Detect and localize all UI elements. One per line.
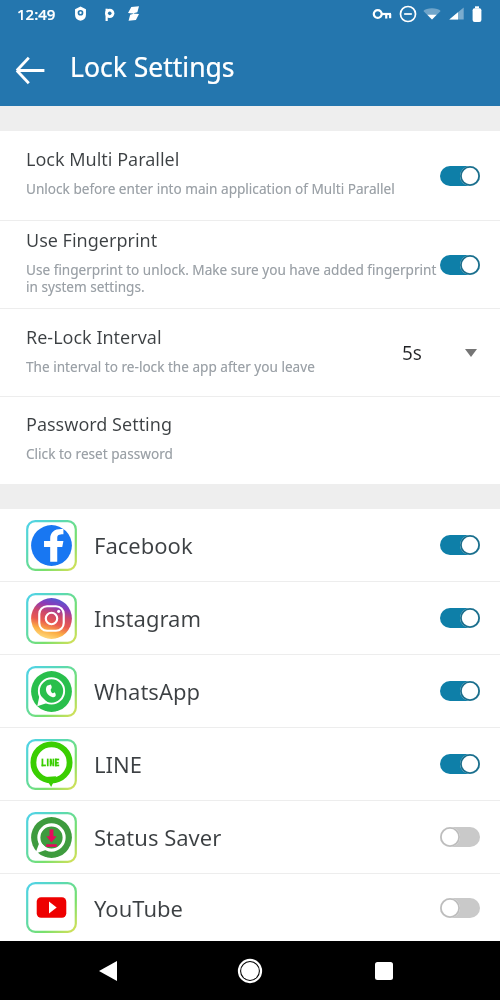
staticText: 12:49 — [17, 4, 56, 24]
staticText: Use fingerprint to unlock. Make sure you… — [26, 260, 437, 296]
button[interactable]: Enabled toggle — [439, 252, 481, 278]
button[interactable]: Facebook — [0, 509, 500, 581]
button[interactable]: Use Fingerprint — [0, 221, 500, 308]
button[interactable]: Disabled toggle — [439, 895, 481, 921]
button[interactable]: Back — [78, 941, 138, 1000]
staticText: Password Setting — [26, 412, 172, 437]
button[interactable]: Enabled toggle — [439, 605, 481, 631]
button[interactable]: Home — [220, 941, 280, 1000]
button[interactable]: Password Setting — [0, 397, 500, 484]
staticText: Instagram — [94, 603, 439, 633]
staticText: Unlock before enter into main applicatio… — [26, 179, 395, 198]
button[interactable]: LINE — [0, 728, 500, 800]
button[interactable]: Lock Multi Parallel — [0, 131, 500, 220]
button[interactable]: Back — [6, 46, 54, 94]
staticText: Click to reset password — [26, 444, 173, 463]
button[interactable]: Re-Lock Interval — [0, 309, 500, 396]
staticText: Lock Multi Parallel — [26, 147, 180, 172]
button[interactable]: Enabled toggle — [439, 163, 481, 189]
button[interactable]: Instagram — [0, 582, 500, 654]
button[interactable]: Disabled toggle — [439, 824, 481, 850]
staticText: Use Fingerprint — [26, 228, 158, 253]
staticText: Re-Lock Interval — [26, 325, 162, 350]
staticText: YouTube — [94, 893, 439, 923]
staticText: 5s — [402, 340, 422, 366]
button[interactable]: Enabled toggle — [439, 751, 481, 777]
staticText: Status Saver — [94, 822, 439, 852]
staticText: The interval to re-lock the app after yo… — [26, 357, 315, 376]
button[interactable]: Enabled toggle — [439, 678, 481, 704]
button[interactable]: Enabled toggle — [439, 532, 481, 558]
button[interactable]: Status Saver — [0, 801, 500, 873]
staticText: Lock Settings — [70, 49, 235, 85]
staticText: LINE — [94, 749, 439, 779]
button[interactable]: YouTube — [0, 874, 500, 941]
button[interactable]: WhatsApp — [0, 655, 500, 727]
button[interactable]: Recent apps — [354, 941, 414, 1000]
staticText: Facebook — [94, 530, 439, 560]
staticText: WhatsApp — [94, 676, 439, 706]
